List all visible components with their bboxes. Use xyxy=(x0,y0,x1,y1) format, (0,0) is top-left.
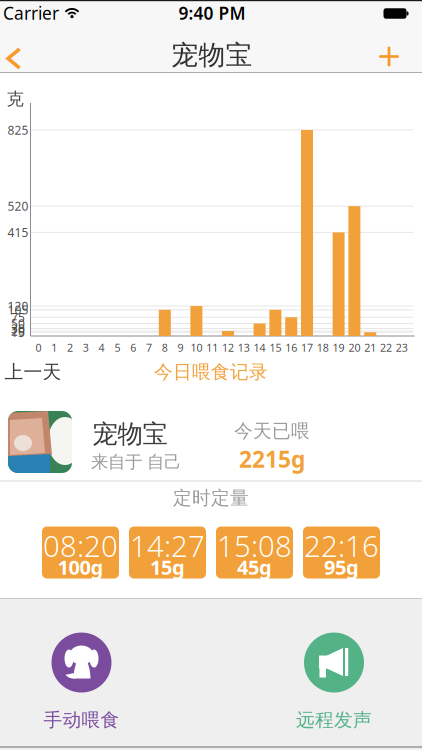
staticText: 22 xyxy=(380,340,392,355)
staticText: 宠物宝 xyxy=(92,418,167,449)
button[interactable]: 14:27 xyxy=(129,526,206,578)
staticText: 120 xyxy=(7,298,28,314)
staticText: 95g xyxy=(324,554,359,580)
button[interactable]: Back xyxy=(3,46,31,71)
staticText: 10 xyxy=(190,340,202,355)
staticText: 15 xyxy=(269,340,281,355)
staticText: 45g xyxy=(237,554,272,580)
staticText: 宠物宝 xyxy=(171,39,252,71)
staticText: 21 xyxy=(364,340,376,355)
staticText: 08:20 xyxy=(43,526,118,565)
staticText: 来自于 自己 xyxy=(91,451,181,473)
staticText: 19 xyxy=(333,340,345,355)
staticText: Carrier xyxy=(3,1,59,24)
staticText: 手动喂食 xyxy=(43,708,119,731)
staticText: 8 xyxy=(162,340,168,355)
staticText: 75 xyxy=(11,309,25,325)
staticText: 30 xyxy=(11,320,25,336)
staticText: 20 xyxy=(11,323,25,339)
staticText: 20 xyxy=(348,340,360,355)
button[interactable]: 上一天 xyxy=(4,360,61,383)
button[interactable]: 08:20 xyxy=(42,526,119,578)
button[interactable]: 远程发声 xyxy=(296,632,372,731)
staticText: 14:27 xyxy=(130,526,205,565)
staticText: 15:08 xyxy=(217,526,292,565)
staticText: 15g xyxy=(150,554,185,580)
staticText: 18 xyxy=(317,340,329,355)
staticText: 17 xyxy=(301,340,313,355)
staticText: 50 xyxy=(11,315,25,331)
staticText: 5 xyxy=(114,340,120,355)
staticText: 100g xyxy=(57,554,103,580)
button[interactable]: Add xyxy=(377,44,401,68)
staticText: 11 xyxy=(206,340,218,355)
staticText: 14 xyxy=(254,340,266,355)
button[interactable]: 15:08 xyxy=(216,526,293,578)
staticText: 13 xyxy=(238,340,250,355)
button[interactable]: 手动喂食 xyxy=(43,632,119,731)
staticText: 6 xyxy=(130,340,136,355)
staticText: 520 xyxy=(7,198,28,214)
staticText: 0 xyxy=(35,340,41,355)
staticText: 12 xyxy=(222,340,234,355)
button[interactable]: 22:16 xyxy=(303,526,380,578)
button[interactable]: 今日喂食记录 xyxy=(154,360,268,383)
staticText: 克 xyxy=(6,88,23,110)
staticText: 4 xyxy=(99,340,105,355)
staticText: 今天已喂 xyxy=(234,419,310,442)
staticText: 今日喂食记录 xyxy=(154,360,268,383)
staticText: 2215g xyxy=(239,444,305,474)
staticText: 9 xyxy=(178,340,184,355)
staticText: 23 xyxy=(396,340,408,355)
staticText: 定时定量 xyxy=(173,486,249,509)
staticText: 远程发声 xyxy=(296,708,372,731)
staticText: 3 xyxy=(83,340,89,355)
staticText: 2 xyxy=(67,340,73,355)
staticText: 22:16 xyxy=(304,526,379,565)
staticText: 1 xyxy=(51,340,57,355)
staticText: 7 xyxy=(146,340,152,355)
staticText: 9:40 PM xyxy=(178,1,245,24)
staticText: 825 xyxy=(7,122,28,138)
staticText: 105 xyxy=(7,302,28,318)
staticText: 15 xyxy=(11,324,25,340)
staticText: 16 xyxy=(285,340,297,355)
staticText: 上一天 xyxy=(4,360,61,383)
staticText: 415 xyxy=(7,224,28,240)
